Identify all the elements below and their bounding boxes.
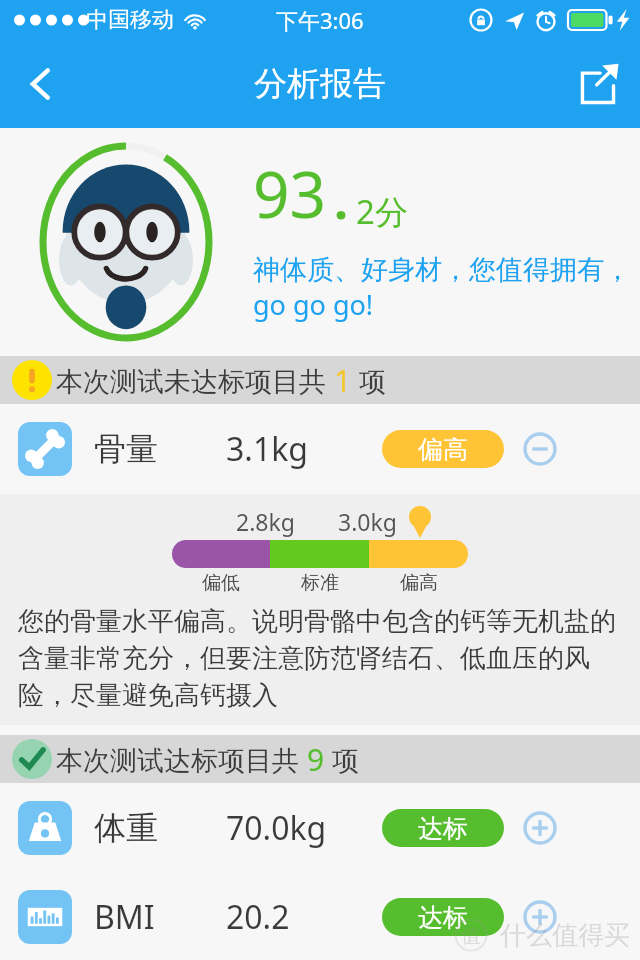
staticText: 项 xyxy=(352,362,387,399)
button[interactable]: 达标 xyxy=(382,898,504,936)
staticText: 达标 xyxy=(418,813,468,844)
button[interactable]: 偏高 xyxy=(382,430,504,468)
staticText: 骨量 xyxy=(94,429,226,469)
button[interactable]: Share xyxy=(556,40,640,128)
staticText: 93 xyxy=(253,150,327,237)
staticText: . xyxy=(334,166,349,234)
staticText: 2分 xyxy=(356,189,408,234)
button[interactable]: Expand xyxy=(518,895,562,939)
staticText: 2.8kg xyxy=(236,506,295,537)
staticText: 神体质、好身材，您值得拥有，go go go! xyxy=(253,253,638,323)
staticText: 3.0kg xyxy=(338,506,397,537)
staticText: BMI xyxy=(94,895,226,939)
staticText: 偏高 xyxy=(400,571,438,595)
staticText: 项 xyxy=(325,741,360,778)
button[interactable]: Back xyxy=(0,40,82,128)
staticText: 20.2 xyxy=(226,895,382,939)
staticText: 本次测试未达标项目共 xyxy=(56,362,334,399)
button[interactable]: Expand xyxy=(518,806,562,850)
button[interactable]: 达标 xyxy=(382,809,504,847)
staticText: 值 xyxy=(461,923,481,948)
staticText: 70.0kg xyxy=(226,806,382,850)
staticText: 偏低 xyxy=(202,571,240,595)
staticText: 偏高 xyxy=(418,434,468,465)
staticText: 下午3:06 xyxy=(276,5,364,35)
staticText: 您的骨量水平偏高。说明骨骼中包含的钙等无机盐的含量非常充分，但要注意防范肾结石、… xyxy=(18,605,622,711)
button[interactable]: 骨量 xyxy=(0,404,640,494)
button[interactable]: Collapse xyxy=(518,427,562,471)
staticText: 达标 xyxy=(418,902,468,933)
staticText: 什么值得买 xyxy=(500,919,630,952)
staticText: 中国移动 xyxy=(86,6,174,34)
staticText: 1 xyxy=(334,360,352,401)
staticText: 分析报告 xyxy=(254,63,386,105)
staticText: 本次测试达标项目共 xyxy=(56,741,307,778)
staticText: 9 xyxy=(307,739,325,780)
staticText: 3.1kg xyxy=(226,427,382,471)
button[interactable]: 体重 xyxy=(0,783,640,873)
staticText: 体重 xyxy=(94,808,226,848)
staticText: 标准 xyxy=(301,571,339,595)
button[interactable]: BMI xyxy=(0,873,640,960)
